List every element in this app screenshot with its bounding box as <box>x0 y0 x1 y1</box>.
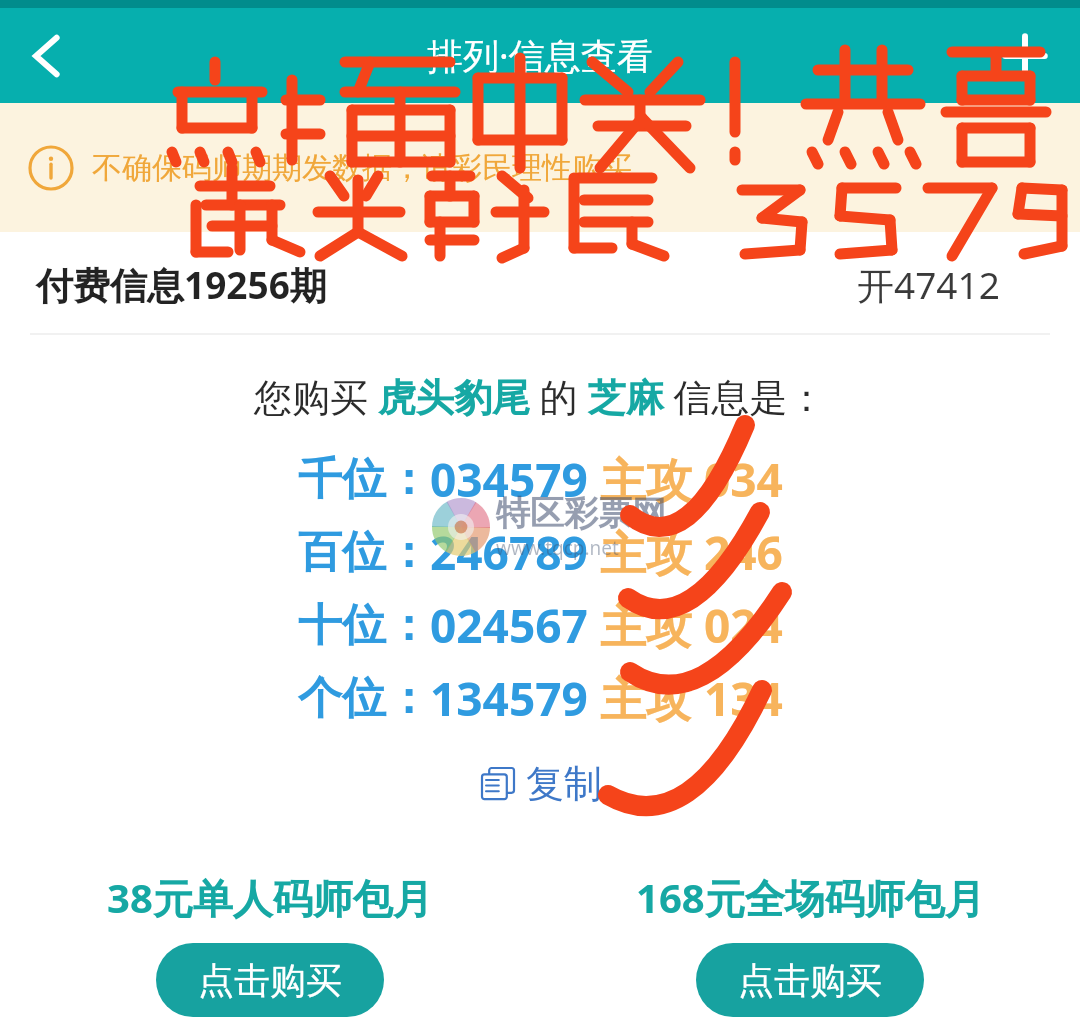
staticText: 38元单人码师包月 <box>107 870 433 925</box>
staticText: 246789 <box>430 521 588 584</box>
button[interactable]: 点击购买 <box>696 943 924 1017</box>
staticText: 十位： <box>298 598 430 653</box>
staticText: 复制 <box>526 760 602 808</box>
button[interactable]: 复制 <box>470 756 610 812</box>
staticText: 主攻 246 <box>600 521 783 584</box>
staticText: 开47412 <box>857 259 1000 310</box>
staticText: 千位： <box>298 452 430 507</box>
button[interactable]: 点击购买 <box>156 943 384 1017</box>
staticText: 您购买 虎头豹尾 的 芝麻 信息是： <box>254 370 826 422</box>
staticText: www.tqcp.net <box>496 535 619 561</box>
staticText: 主攻 024 <box>600 594 783 657</box>
staticText: 百位： <box>298 525 430 580</box>
staticText: 不确保码师期期发数据，请彩民理性购买 <box>92 149 632 187</box>
staticText: 主攻 034 <box>600 448 783 511</box>
staticText: 024567 <box>430 594 588 657</box>
staticText: 个位： <box>298 671 430 726</box>
staticText: 点击购买 <box>738 958 882 1003</box>
staticText: 特区彩票网 <box>496 492 666 535</box>
button[interactable]: Add <box>970 12 1080 99</box>
staticText: 主攻 134 <box>600 667 783 730</box>
staticText: 134579 <box>430 667 588 730</box>
staticText: 168元全场码师包月 <box>636 870 985 925</box>
staticText: 点击购买 <box>198 958 342 1003</box>
button[interactable]: Back <box>0 12 96 99</box>
staticText: 034579 <box>430 448 588 511</box>
staticText: 付费信息19256期 <box>36 259 327 310</box>
staticText: 排列·信息查看 <box>427 31 653 80</box>
